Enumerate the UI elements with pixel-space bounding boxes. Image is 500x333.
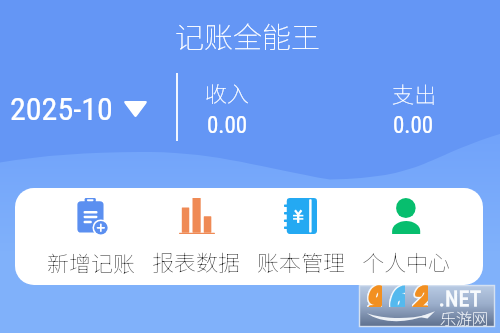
staticText: 乐游网 — [440, 306, 489, 329]
button[interactable]: 个人中心 — [362, 188, 451, 277]
staticText: 2 — [412, 281, 428, 307]
staticText: 收入 — [205, 76, 250, 108]
staticText: 9 — [366, 281, 382, 307]
button[interactable]: 账本管理 — [257, 188, 346, 277]
staticText: 支出 — [392, 77, 437, 109]
staticText: 0.00 — [393, 112, 434, 139]
staticText: 2 — [412, 281, 428, 307]
staticText: 2 — [412, 281, 428, 307]
button[interactable]: 报表数据 — [152, 188, 241, 277]
staticText: 报表数据 — [152, 245, 241, 277]
button[interactable]: 新增记账 — [47, 188, 136, 278]
staticText: 6 — [389, 281, 405, 307]
staticText: 2025-10 — [10, 90, 113, 128]
staticText: 账本管理 — [257, 245, 346, 277]
other: Select month — [123, 101, 148, 118]
staticText: 新增记账 — [47, 246, 136, 278]
staticText: .NET — [439, 287, 482, 312]
staticText: 6 — [389, 281, 405, 307]
staticText: 9 — [366, 281, 382, 307]
button[interactable]: 2025-10 — [10, 90, 150, 128]
staticText: 个人中心 — [362, 245, 451, 277]
staticText: 6 — [389, 281, 405, 307]
staticText: 记账全能王 — [175, 14, 321, 56]
staticText: 0.00 — [207, 112, 248, 139]
staticText: 9 — [366, 281, 382, 307]
